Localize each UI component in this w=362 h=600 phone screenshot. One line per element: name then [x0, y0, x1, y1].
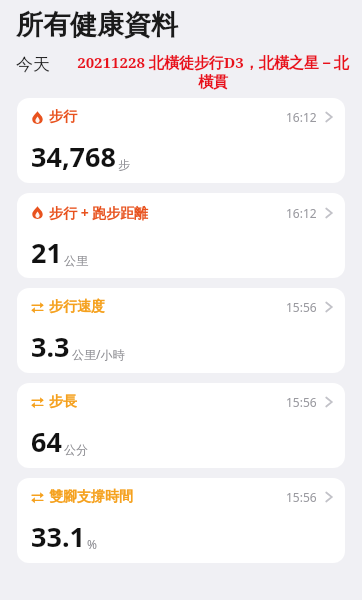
- other: Walking metric: [31, 301, 44, 314]
- staticText: 64: [31, 423, 62, 460]
- button[interactable]: Walking metric: [17, 383, 345, 468]
- staticText: 所有健康資料: [16, 8, 178, 42]
- staticText: 15:56: [286, 299, 317, 315]
- staticText: 步行: [49, 108, 77, 126]
- staticText: 公里/小時: [72, 346, 125, 362]
- staticText: 今天: [16, 54, 50, 75]
- staticText: 16:12: [286, 109, 317, 125]
- staticText: 16:12: [286, 205, 317, 221]
- staticText: 34,768: [31, 138, 116, 175]
- staticText: 步行速度: [49, 298, 105, 316]
- button[interactable]: Walking metric: [17, 478, 345, 563]
- other: Walking metric: [31, 491, 44, 504]
- button[interactable]: Walking metric: [17, 288, 345, 373]
- staticText: 公分: [64, 442, 88, 457]
- staticText: %: [87, 536, 97, 552]
- button[interactable]: Steps: [17, 193, 345, 278]
- staticText: 15:56: [286, 489, 317, 505]
- button[interactable]: Steps: [17, 98, 345, 183]
- staticText: 公里: [64, 253, 88, 268]
- staticText: 15:56: [286, 394, 317, 410]
- other: Walking metric: [31, 396, 44, 409]
- staticText: 33.1: [31, 518, 85, 555]
- staticText: 20211228 北橫徒步行D3，北橫之星－北橫貫: [72, 52, 354, 92]
- other: Steps: [31, 111, 44, 124]
- staticText: 步行 + 跑步距離: [49, 203, 149, 222]
- other: Steps: [31, 206, 44, 219]
- staticText: 21: [31, 234, 62, 271]
- staticText: 步: [118, 157, 130, 172]
- staticText: 步長: [49, 393, 77, 411]
- staticText: 雙腳支撐時間: [49, 488, 133, 506]
- staticText: 3.3: [31, 328, 70, 365]
